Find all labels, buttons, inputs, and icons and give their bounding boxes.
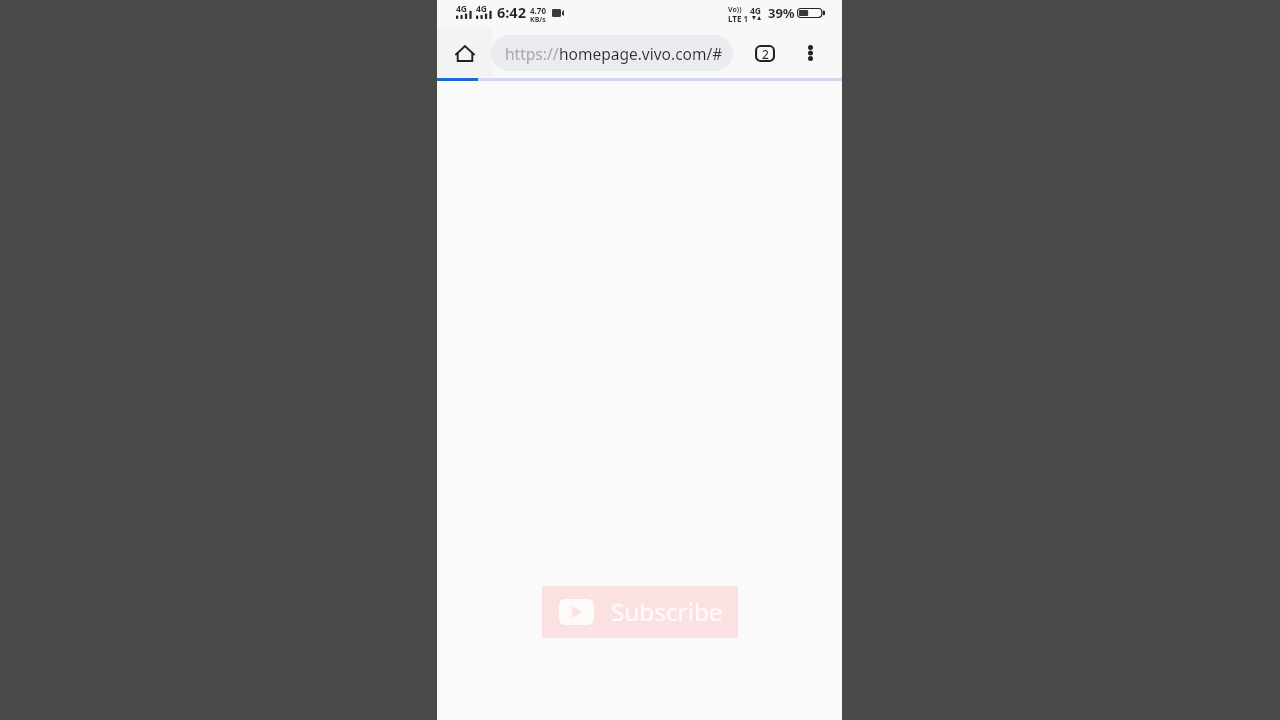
staticText: LTE 1 [728, 13, 749, 24]
staticText: 2 [762, 46, 769, 62]
staticText: Vo)) [728, 5, 742, 15]
staticText: https:// [505, 43, 559, 64]
staticText: KB/s [530, 15, 546, 25]
button[interactable]: More options [792, 35, 828, 71]
staticText: 4G [456, 3, 468, 15]
staticText: 4.70 [530, 5, 546, 16]
staticText: 6:42 [497, 2, 526, 22]
button[interactable]: Tabs, 2 open [747, 35, 783, 71]
button[interactable]: Subscribe [542, 586, 738, 638]
staticText: 39% [768, 4, 795, 22]
staticText: 4G [750, 5, 762, 17]
button[interactable]: Home [445, 33, 485, 73]
staticText: 4G [476, 3, 488, 15]
staticText: Subscribe [611, 595, 723, 628]
button[interactable]: https:// [491, 35, 733, 71]
staticText: homepage.vivo.com/# [559, 43, 723, 64]
